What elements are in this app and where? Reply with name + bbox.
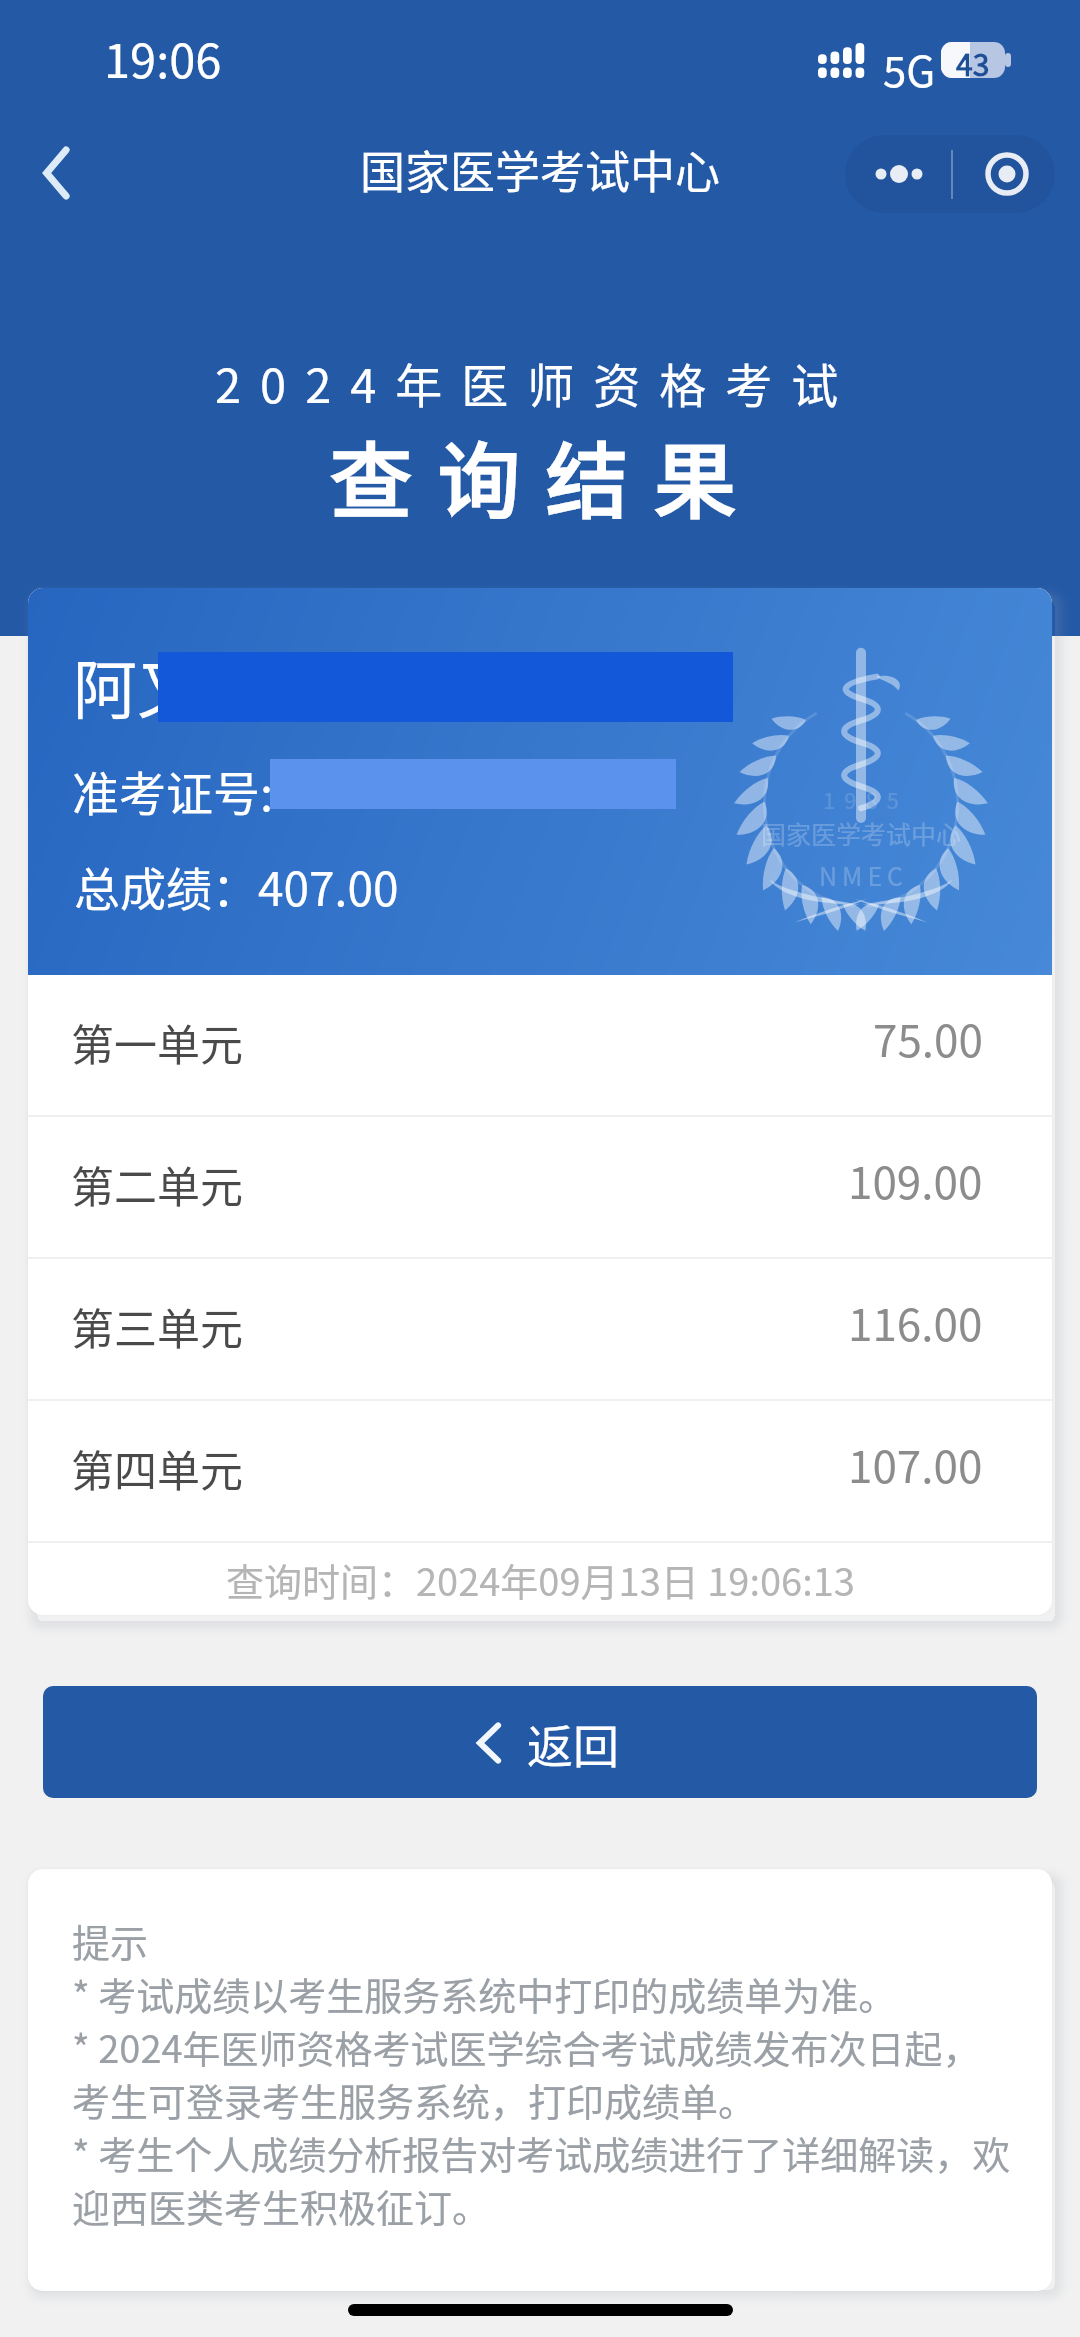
staticText: 19:06 [104, 23, 222, 91]
staticText: 国家医学考试中心 [761, 815, 962, 851]
staticText: 75.00 [873, 1006, 983, 1070]
button[interactable]: 第一单元 [28, 975, 1052, 1115]
staticText: 查询结果 [330, 416, 763, 535]
button[interactable]: 第三单元 [28, 1259, 1052, 1399]
staticText: NMEC [819, 857, 909, 893]
button[interactable]: More options [845, 135, 952, 213]
staticText: 2024年医师资格考试 [215, 348, 858, 416]
button[interactable]: Close mini program [952, 135, 1055, 213]
staticText: 第二单元 [71, 1153, 243, 1215]
staticText: 109.00 [848, 1148, 983, 1212]
button[interactable]: 返回 [43, 1686, 1037, 1798]
staticText: 准考证号: [72, 756, 274, 824]
staticText: 第四单元 [71, 1437, 243, 1499]
staticText: 第一单元 [71, 1011, 243, 1073]
staticText: 107.00 [848, 1432, 983, 1496]
staticText: 返回 [527, 1710, 619, 1777]
staticText: 国家医学考试中心 [360, 137, 721, 202]
staticText: 总成绩：407.00 [74, 853, 399, 920]
staticText: 查询时间：2024年09月13日 19:06:13 [226, 1552, 855, 1607]
staticText: 116.00 [848, 1290, 983, 1354]
button[interactable]: 第四单元 [28, 1401, 1052, 1541]
staticText: 提示 * 考试成绩以考生服务系统中打印的成绩单为准。 * 2024年医师资格考试… [72, 1913, 1011, 2233]
staticText: 阿又 [73, 639, 201, 732]
button[interactable]: Back [2, 118, 112, 228]
staticText: 43 [956, 42, 990, 77]
button[interactable]: 第二单元 [28, 1117, 1052, 1257]
staticText: 1985 [823, 783, 908, 815]
staticText: 5G [883, 38, 936, 99]
staticText: 第三单元 [71, 1295, 243, 1357]
